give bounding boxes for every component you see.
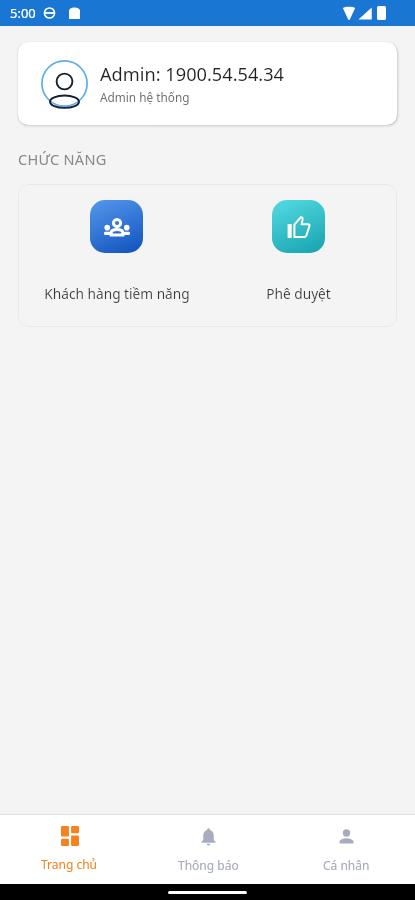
button[interactable]: Admin: 1900.54.54.34 (18, 42, 397, 125)
staticText: CHỨC NĂNG (18, 149, 107, 169)
button[interactable]: Thông báo (139, 815, 277, 884)
staticText: Admin hệ thống (100, 89, 190, 105)
staticText: Phê duyệt (266, 284, 331, 303)
staticText: Khách hàng tiềm năng (44, 284, 190, 303)
staticText: Admin: 1900.54.54.34 (100, 62, 285, 87)
button[interactable]: Khách hàng tiềm năng (26, 200, 207, 303)
staticText: 5:00 (10, 4, 36, 22)
button[interactable]: Cá nhân (277, 815, 415, 884)
button[interactable]: Phê duyệt (207, 200, 389, 303)
button[interactable]: Trang chủ (0, 815, 139, 884)
staticText: Cá nhân (323, 857, 370, 873)
staticText: Thông báo (178, 857, 239, 873)
staticText: Trang chủ (41, 856, 98, 872)
